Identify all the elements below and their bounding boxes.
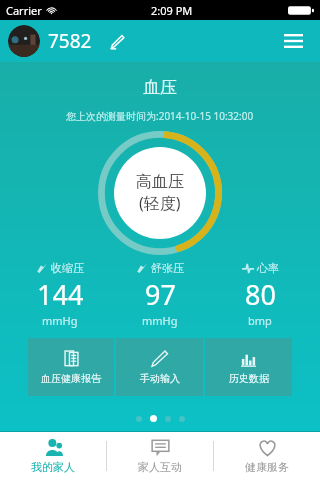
button[interactable]: 收缩压 — [10, 261, 110, 328]
staticText: Carrier — [6, 3, 42, 18]
button[interactable]: Menu — [276, 24, 310, 58]
staticText: 7582 — [48, 28, 92, 54]
staticText: mmHg — [42, 313, 78, 328]
staticText: 历史数据 — [229, 372, 269, 385]
button[interactable]: 家人互动 — [107, 432, 213, 480]
staticText: 80 — [245, 276, 276, 313]
button[interactable]: 心率 — [210, 261, 310, 328]
button[interactable]: 手动输入 — [116, 338, 203, 396]
staticText: 144 — [37, 276, 84, 313]
button[interactable]: Edit name — [104, 29, 128, 53]
button[interactable]: 我的家人 — [0, 432, 106, 480]
staticText: 家人互动 — [138, 460, 182, 474]
staticText: 97 — [145, 276, 176, 313]
staticText: 收缩压 — [51, 261, 84, 275]
staticText: 血压 — [143, 77, 177, 98]
staticText: bmp — [248, 313, 272, 328]
staticText: 我的家人 — [31, 460, 75, 474]
staticText: 您上次的测量时间为:2014-10-15 10:32:00 — [66, 109, 254, 123]
button[interactable] — [136, 416, 142, 422]
button[interactable] — [165, 416, 171, 422]
button[interactable]: 舒张压 — [110, 261, 210, 328]
staticText: 2:09 PM — [151, 3, 193, 18]
staticText: 心率 — [257, 261, 279, 275]
button[interactable] — [150, 415, 157, 422]
button[interactable]: 健康服务 — [214, 432, 320, 480]
button[interactable]: 血压健康报告 — [28, 338, 114, 396]
button[interactable]: 历史数据 — [205, 338, 292, 396]
staticText: (轻度) — [139, 192, 181, 214]
staticText: 舒张压 — [151, 261, 184, 275]
staticText: 手动输入 — [140, 372, 180, 385]
button[interactable] — [179, 416, 185, 422]
staticText: 血压健康报告 — [41, 372, 101, 385]
staticText: mmHg — [142, 313, 178, 328]
staticText: 健康服务 — [245, 460, 289, 474]
staticText: 高血压 — [136, 172, 184, 192]
